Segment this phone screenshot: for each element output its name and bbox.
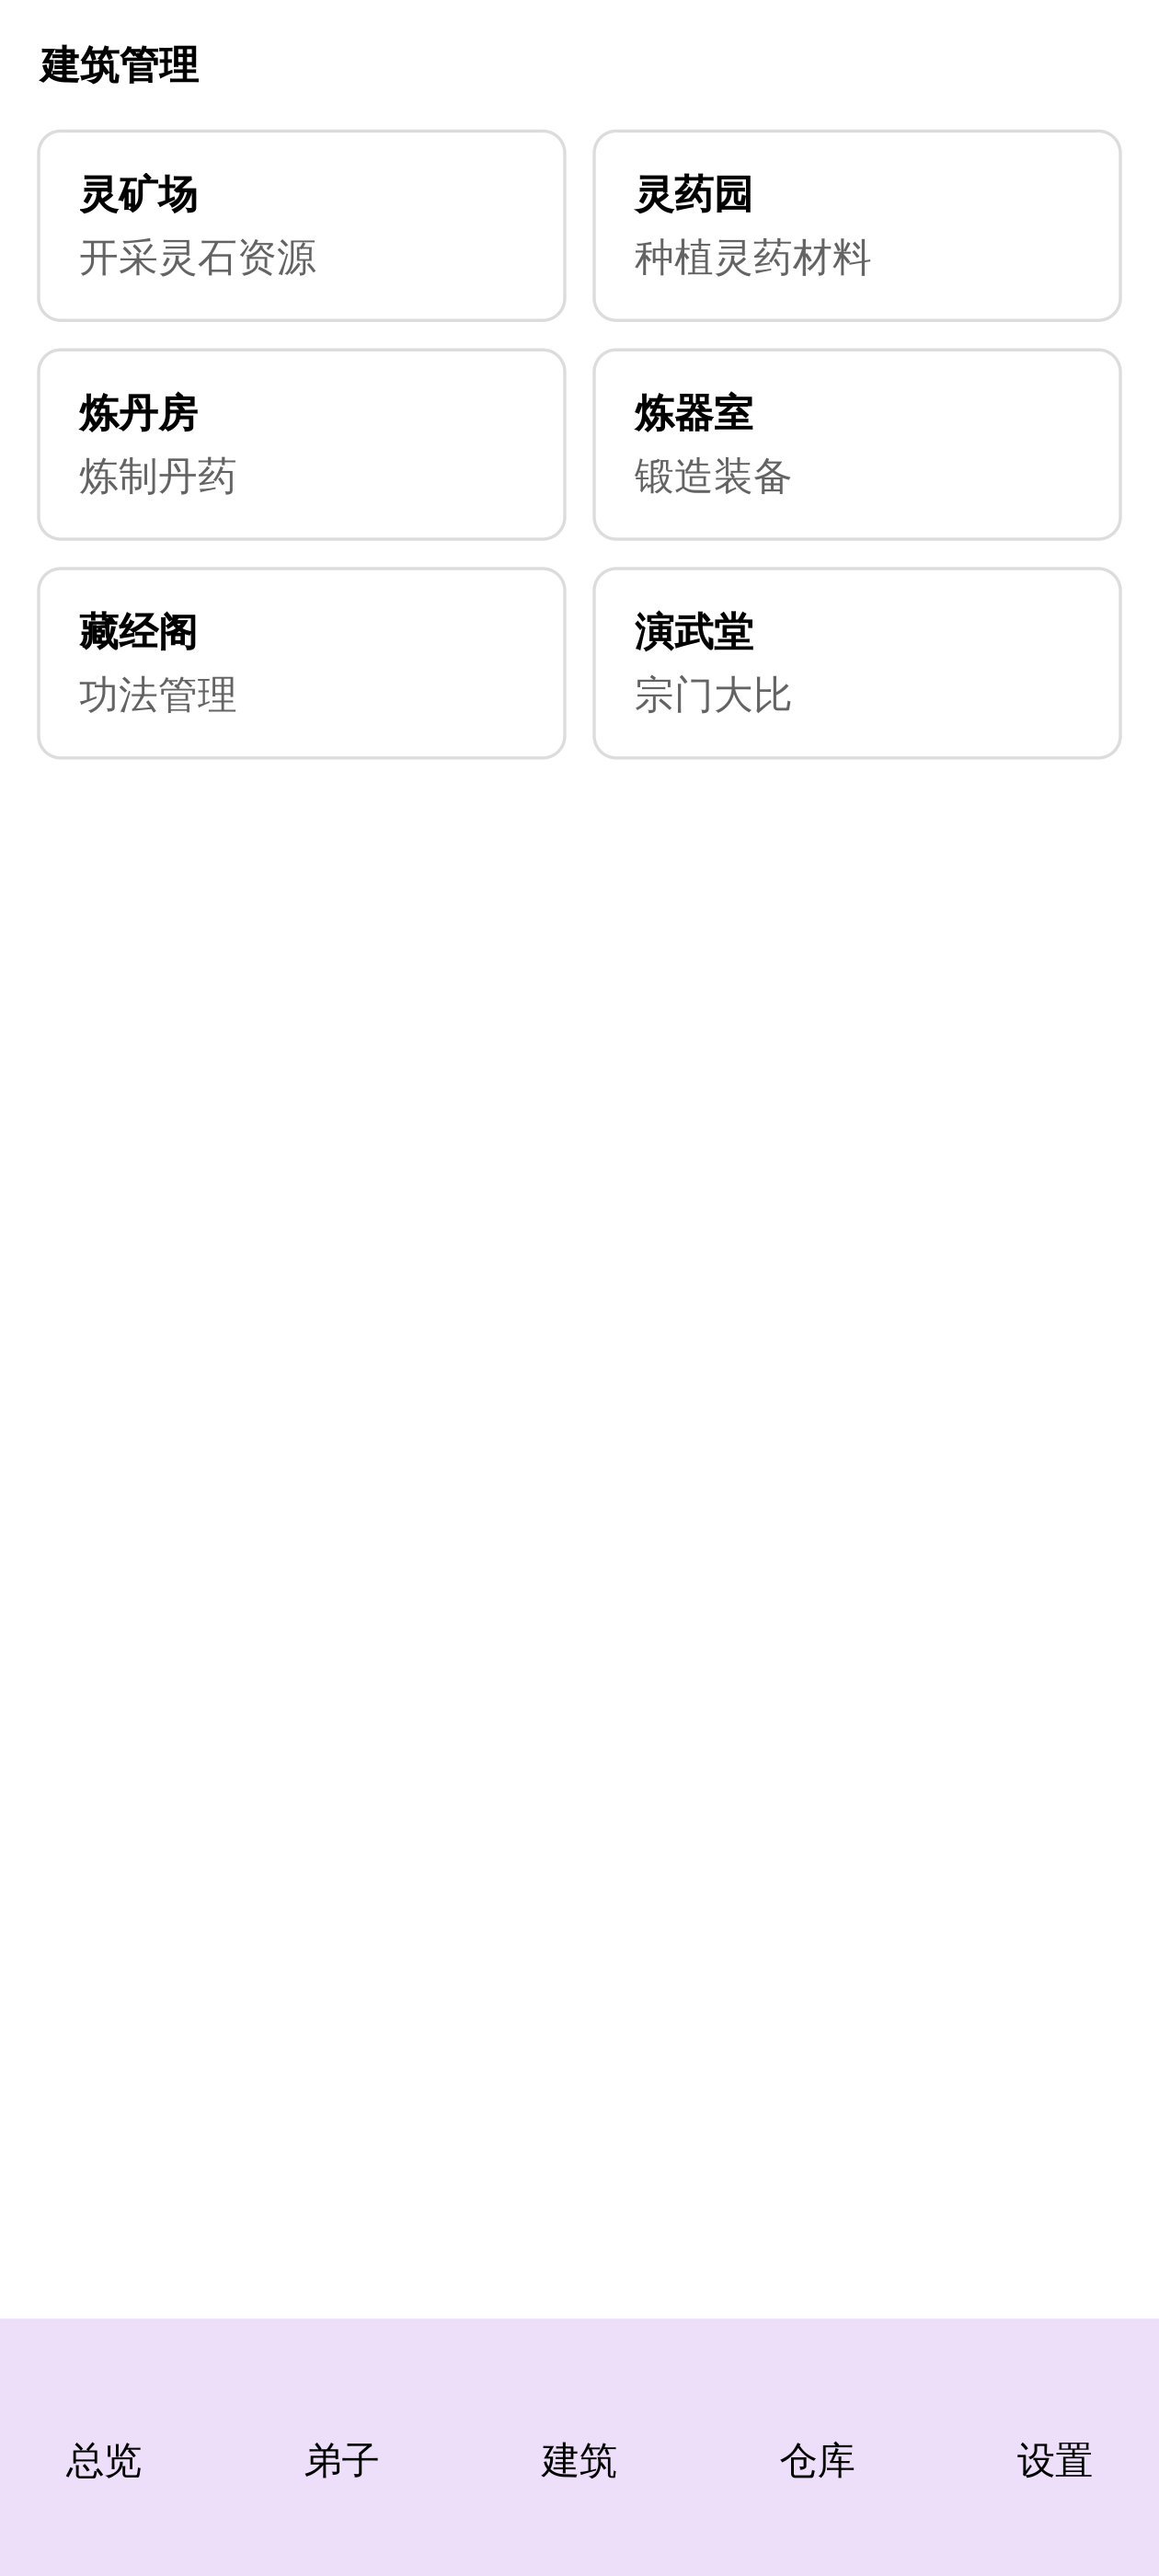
staticText: 演武堂 (635, 608, 753, 656)
button[interactable]: 灵矿场 (39, 131, 565, 320)
staticText: 炼器室 (635, 389, 753, 438)
button[interactable]: 藏经阁 (39, 569, 565, 758)
staticText: 仓库 (780, 2437, 855, 2484)
button[interactable]: 设置 (962, 2319, 1148, 2576)
button[interactable]: 建筑 (487, 2319, 672, 2576)
staticText: 灵矿场 (79, 171, 198, 219)
staticText: 功法管理 (79, 671, 237, 719)
button[interactable]: 炼器室 (594, 350, 1120, 539)
button[interactable]: 灵药园 (594, 131, 1120, 320)
button[interactable]: 弟子 (249, 2319, 435, 2576)
button[interactable]: 演武堂 (594, 569, 1120, 758)
staticText: 设置 (1017, 2437, 1093, 2484)
staticText: 建筑 (542, 2437, 617, 2484)
staticText: 炼制丹药 (79, 452, 237, 500)
button[interactable]: 总览 (11, 2319, 197, 2576)
staticText: 总览 (66, 2437, 142, 2484)
staticText: 开采灵石资源 (79, 233, 316, 282)
staticText: 建筑管理 (40, 41, 199, 90)
button[interactable]: 炼丹房 (39, 350, 565, 539)
staticText: 藏经阁 (79, 608, 198, 656)
staticText: 灵药园 (635, 171, 753, 219)
staticText: 炼丹房 (79, 389, 198, 438)
staticText: 弟子 (304, 2437, 379, 2484)
button[interactable]: 仓库 (724, 2319, 910, 2576)
staticText: 锻造装备 (635, 452, 793, 500)
staticText: 种植灵药材料 (635, 233, 872, 282)
staticText: 宗门大比 (635, 671, 793, 719)
